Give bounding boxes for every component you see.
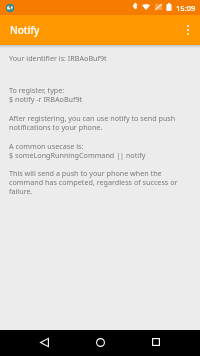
staticText: To register, type: $ notify -r IRBAoBuf9… — [9, 86, 83, 104]
button[interactable]: Recents — [140, 329, 172, 355]
staticText: A common usecase is: $ someLongRunningCo… — [9, 142, 146, 160]
staticText: This will send a push to your phone when… — [9, 169, 191, 196]
button[interactable]: More options — [175, 17, 200, 43]
staticText: Your identifier is: IRBAoBuf9t — [9, 54, 107, 63]
staticText: After registering, you can use notify to… — [9, 114, 191, 132]
button[interactable]: Home — [84, 329, 116, 355]
staticText: 15:09 — [176, 3, 196, 13]
button[interactable]: Back — [28, 329, 60, 355]
staticText: Notify — [10, 23, 40, 37]
